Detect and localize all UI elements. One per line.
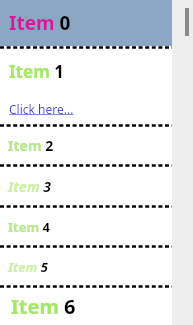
staticText: Item 5 — [8, 258, 48, 276]
staticText: Item 0 — [9, 10, 71, 36]
staticText: Click here... — [9, 101, 74, 117]
button[interactable]: Item 6 — [0, 288, 172, 325]
button[interactable]: Item 0 — [0, 0, 172, 46]
staticText: Item 3 — [8, 177, 51, 196]
button[interactable]: Item 3 — [0, 167, 172, 205]
staticText: Item 2 — [8, 136, 54, 155]
button[interactable]: Click here... — [0, 94, 172, 124]
button[interactable]: Item 2 — [0, 127, 172, 164]
staticText: Item 6 — [11, 293, 76, 320]
button[interactable]: Item 4 — [0, 208, 172, 245]
button[interactable]: Item 5 — [0, 248, 172, 285]
staticText: Item 4 — [8, 218, 50, 236]
staticText: Item 1 — [9, 60, 64, 83]
button[interactable]: Item 1 — [0, 49, 172, 94]
